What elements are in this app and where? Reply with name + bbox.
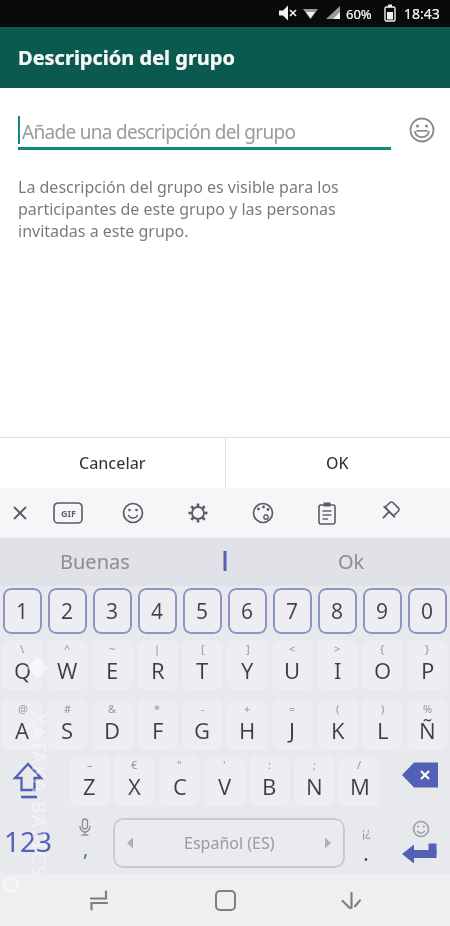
button[interactable]: :	[249, 756, 290, 806]
staticText: J	[289, 715, 296, 745]
staticText: Y	[241, 655, 254, 685]
button[interactable]: /	[339, 756, 380, 806]
staticText: ^	[64, 641, 71, 656]
staticText: 4	[151, 597, 164, 626]
staticText: invitadas a este grupo.	[18, 220, 189, 242]
button[interactable]: 3	[93, 588, 132, 634]
staticText: 6	[241, 597, 254, 626]
button[interactable]: (	[317, 700, 358, 750]
staticText: \	[20, 641, 25, 656]
button[interactable]: |	[137, 640, 178, 690]
staticText: 2	[61, 597, 74, 626]
staticText: X	[128, 771, 141, 801]
staticText: |	[154, 641, 161, 656]
button[interactable]: OK	[225, 438, 450, 488]
staticText: 123	[4, 822, 53, 860]
staticText: (	[336, 701, 340, 716]
staticText: #	[64, 701, 72, 716]
staticText: Descripción del grupo	[18, 44, 235, 71]
staticText: XATAKA BASICS	[26, 713, 52, 878]
staticText: 7	[286, 597, 299, 626]
button[interactable]: ^	[47, 640, 88, 690]
staticText: Español (ES)	[184, 832, 275, 854]
button[interactable]: 1	[3, 588, 42, 634]
button[interactable]: {	[362, 640, 403, 690]
button[interactable]: =	[272, 700, 313, 750]
staticText: :	[268, 757, 271, 772]
staticText: F	[152, 715, 164, 745]
staticText: 60%	[346, 5, 372, 23]
staticText: B	[262, 771, 277, 801]
staticText: ~	[109, 641, 116, 656]
button[interactable]: <	[272, 640, 313, 690]
staticText: La descripción del grupo es visible para…	[18, 176, 339, 198]
button[interactable]: #	[47, 700, 88, 750]
staticText: =	[289, 701, 296, 716]
staticText: 5	[196, 597, 209, 626]
button[interactable]: &	[92, 700, 133, 750]
staticText: €	[131, 757, 138, 772]
staticText: Buenas	[60, 548, 130, 575]
button[interactable]: Cancelar	[0, 438, 225, 488]
button[interactable]: ;	[294, 756, 335, 806]
button[interactable]: 8	[318, 588, 357, 634]
staticText: Ñ	[419, 715, 436, 745]
button[interactable]: 6	[228, 588, 267, 634]
staticText: S	[61, 715, 74, 745]
staticText: ]	[246, 641, 250, 656]
button[interactable]: €	[114, 756, 155, 806]
button[interactable]: \	[2, 640, 43, 690]
button[interactable]: *	[137, 700, 178, 750]
staticText: R	[151, 655, 165, 685]
button[interactable]: 7	[273, 588, 312, 634]
button[interactable]: ]	[227, 640, 268, 690]
button[interactable]: Español (ES)	[113, 818, 345, 868]
staticText: K	[331, 715, 345, 745]
button[interactable]: 2	[48, 588, 87, 634]
button[interactable]: 5	[183, 588, 222, 634]
staticText: 18:43	[404, 4, 440, 23]
staticText: V	[218, 771, 232, 801]
button[interactable]: +	[227, 700, 268, 750]
staticText: [	[201, 641, 205, 656]
staticText: 8	[331, 597, 344, 626]
staticText: *	[154, 701, 161, 716]
staticText: ;	[313, 757, 316, 772]
button[interactable]: '	[204, 756, 245, 806]
button[interactable]: %	[407, 700, 448, 750]
staticText: GIF	[61, 507, 76, 519]
button[interactable]: [	[182, 640, 223, 690]
staticText: O	[374, 655, 392, 685]
staticText: OK	[326, 452, 349, 474]
staticText: .	[363, 837, 369, 867]
staticText: –	[87, 757, 93, 772]
button[interactable]: Descripción del grupo	[0, 27, 450, 88]
staticText: }	[425, 641, 430, 656]
staticText: Cancelar	[79, 452, 146, 474]
staticText: +	[244, 701, 251, 716]
staticText: L	[377, 715, 389, 745]
staticText: >	[334, 641, 341, 656]
button[interactable]: }	[407, 640, 448, 690]
staticText: Ok	[338, 548, 365, 575]
staticText: <	[289, 641, 296, 656]
staticText: 3	[106, 597, 119, 626]
button[interactable]: >	[317, 640, 358, 690]
button[interactable]: 4	[138, 588, 177, 634]
button[interactable]: -	[182, 700, 223, 750]
button[interactable]: –	[69, 756, 110, 806]
staticText: E	[106, 655, 119, 685]
staticText: Q	[14, 655, 32, 685]
button[interactable]: @	[2, 700, 43, 750]
staticText: "	[177, 757, 182, 772]
button[interactable]: "	[159, 756, 200, 806]
button[interactable]: ~	[92, 640, 133, 690]
staticText: &	[108, 701, 117, 716]
button[interactable]: 0	[408, 588, 447, 634]
staticText: Z	[83, 771, 96, 801]
staticText: N	[306, 771, 323, 801]
button[interactable]: )	[362, 700, 403, 750]
staticText: T	[196, 655, 209, 685]
staticText: I	[334, 655, 342, 685]
button[interactable]: 9	[363, 588, 402, 634]
